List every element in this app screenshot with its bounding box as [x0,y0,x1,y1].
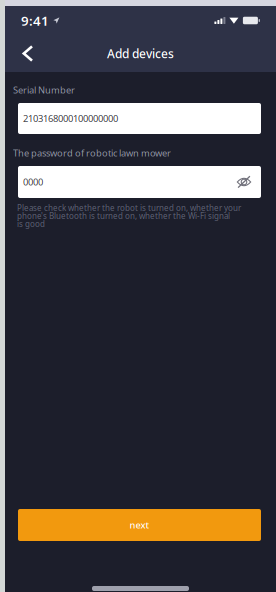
staticText: The password of robotic lawn mower [13,147,171,159]
button[interactable]: next [18,509,261,541]
staticText: 2103168000100000000 [23,112,118,125]
button[interactable]: Show password [233,171,255,193]
staticText: 0000 [23,176,43,188]
staticText: next [129,519,149,531]
staticText: Please check whether the robot is turned… [17,203,241,213]
staticText: phone's Bluetooth is turned on, whether … [17,211,230,221]
staticText: Serial Number [13,84,75,96]
button[interactable]: Back [13,35,43,71]
staticText: 9:41 [21,12,49,29]
staticText: Add devices [107,45,174,61]
staticText: is good [17,219,45,229]
